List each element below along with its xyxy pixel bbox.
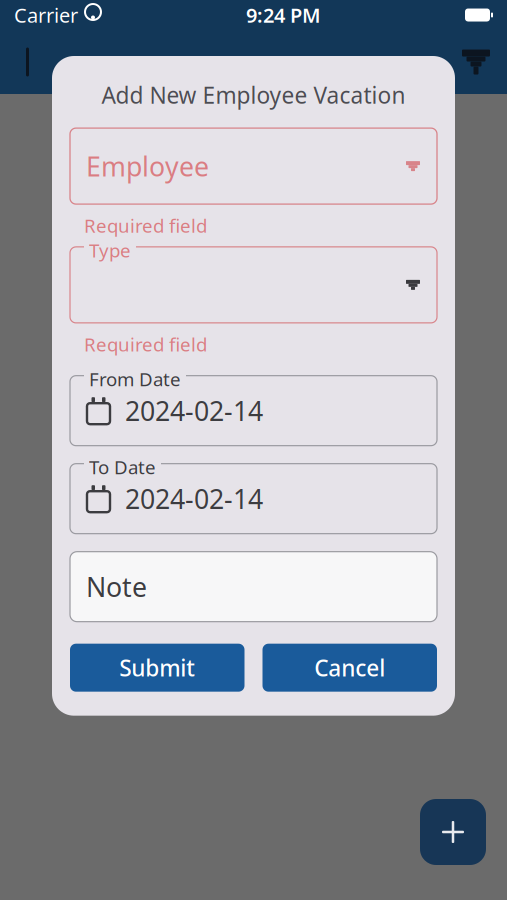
staticText: Required field [84,213,207,238]
staticText: 2024-02-14 [125,393,263,428]
button[interactable]: 2024-02-14 [70,376,437,446]
button[interactable]: 2024-02-14 [70,464,437,534]
button[interactable]: Type [70,247,437,323]
staticText: Carrier [14,2,78,28]
staticText: Add New Employee Vacation [101,80,405,110]
staticText: Required field [84,332,207,357]
staticText: Employee [86,148,209,184]
staticText: Type [89,238,131,263]
staticText: Cancel [314,653,385,683]
button[interactable]: Note [70,552,437,622]
staticText: To Date [89,455,156,479]
staticText: Submit [119,653,195,683]
button[interactable]: Submit [70,644,244,692]
staticText: 9:24 PM [246,2,321,28]
button[interactable]: Back [8,39,54,85]
button[interactable]: Add [420,799,486,865]
staticText: 2024-02-14 [125,481,263,516]
staticText: From Date [89,367,181,391]
button[interactable]: Filter [453,39,499,85]
button[interactable]: Cancel [262,644,437,692]
staticText: Note [86,569,147,604]
button[interactable]: Employee [70,128,437,204]
